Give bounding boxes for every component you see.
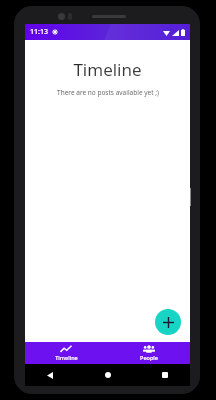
staticText: There are no posts available yet ;) (57, 88, 159, 97)
staticText: Timeline (73, 58, 142, 81)
button[interactable]: Timeline (25, 342, 107, 364)
button[interactable]: Add post (155, 309, 181, 335)
staticText: 11:13 (30, 27, 48, 37)
staticText: Timeline (55, 354, 78, 361)
staticText: People (140, 354, 158, 361)
button[interactable]: Recent apps (158, 368, 172, 382)
button[interactable]: People (107, 342, 190, 364)
button[interactable]: Back (43, 368, 57, 382)
button[interactable]: Home (101, 368, 115, 382)
